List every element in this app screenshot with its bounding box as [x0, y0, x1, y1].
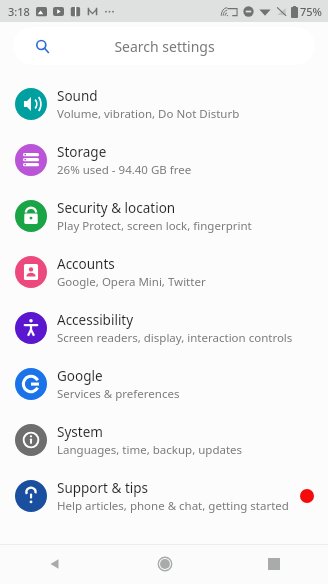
button[interactable]: System — [0, 412, 328, 468]
staticText: Play Protect, screen lock, fingerprint — [57, 218, 252, 234]
staticText: System — [57, 423, 103, 441]
staticText: Support & tips — [57, 479, 149, 497]
button[interactable]: Sound — [0, 76, 328, 132]
staticText: Storage — [57, 143, 107, 161]
staticText: Google, Opera Mini, Twitter — [57, 274, 206, 290]
button[interactable]: Support & tips — [0, 468, 328, 524]
staticText: Languages, time, backup, updates — [57, 442, 243, 458]
staticText: Google — [57, 367, 103, 385]
staticText: 26% used - 94.40 GB free — [57, 162, 192, 178]
button[interactable]: Recents — [219, 544, 328, 584]
staticText: Sound — [57, 87, 98, 105]
button[interactable]: Accessibility — [0, 300, 328, 356]
button[interactable]: Home — [110, 544, 219, 584]
staticText: Accounts — [57, 255, 115, 273]
staticText: Services & preferences — [57, 386, 180, 402]
button[interactable]: Back — [0, 544, 110, 584]
staticText: Help articles, phone & chat, getting sta… — [57, 498, 289, 514]
button[interactable]: Google — [0, 356, 328, 412]
staticText: Search settings — [114, 37, 215, 56]
staticText: Accessibility — [57, 311, 134, 329]
button[interactable]: Storage — [0, 132, 328, 188]
button[interactable]: Search settings — [13, 27, 315, 65]
button[interactable]: Security & location — [0, 188, 328, 244]
staticText: Volume, vibration, Do Not Disturb — [57, 106, 240, 122]
staticText: Screen readers, display, interaction con… — [57, 330, 293, 346]
staticText: Security & location — [57, 199, 176, 217]
staticText: 75% — [300, 4, 322, 19]
button[interactable]: Accounts — [0, 244, 328, 300]
staticText: 3:18 — [8, 4, 30, 19]
